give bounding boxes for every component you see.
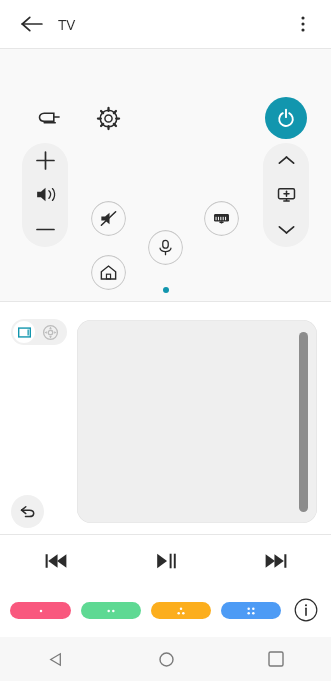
button[interactable]: Home — [91, 255, 126, 290]
button[interactable]: Channel down — [263, 212, 309, 247]
button[interactable]: Back — [0, 637, 111, 681]
button[interactable]: Touchpad — [77, 320, 317, 523]
button[interactable]: Previous — [0, 535, 111, 587]
button[interactable]: Settings — [89, 99, 127, 137]
button[interactable]: Mute — [91, 201, 126, 236]
button[interactable]: Channel up — [263, 143, 309, 177]
staticText: TV — [58, 14, 76, 34]
button[interactable]: Volume up — [22, 143, 68, 177]
button[interactable]: Power — [265, 97, 307, 139]
button[interactable]: Yellow button — [151, 602, 211, 619]
button[interactable]: Next — [221, 535, 331, 587]
button[interactable]: Touchpad mode — [13, 321, 35, 343]
button[interactable]: Recent apps — [221, 637, 331, 681]
button[interactable]: Play or pause — [111, 535, 221, 587]
button[interactable]: Input source — [30, 99, 68, 137]
button[interactable]: Back — [11, 495, 44, 528]
button[interactable]: Voice search — [148, 230, 183, 265]
button[interactable]: Back — [12, 4, 52, 44]
button[interactable]: Blue button — [221, 602, 281, 619]
button[interactable]: Volume down — [22, 212, 68, 247]
button[interactable]: Info — [291, 595, 321, 625]
button[interactable]: Keyboard — [204, 201, 239, 236]
button[interactable]: Red button — [10, 602, 71, 619]
button[interactable]: Green button — [81, 602, 141, 619]
button[interactable]: More options — [283, 4, 323, 44]
button[interactable]: Home — [111, 637, 221, 681]
button[interactable]: D-pad mode — [39, 321, 61, 343]
button[interactable]: Channel list — [263, 177, 309, 212]
button[interactable]: Volume — [22, 177, 68, 212]
